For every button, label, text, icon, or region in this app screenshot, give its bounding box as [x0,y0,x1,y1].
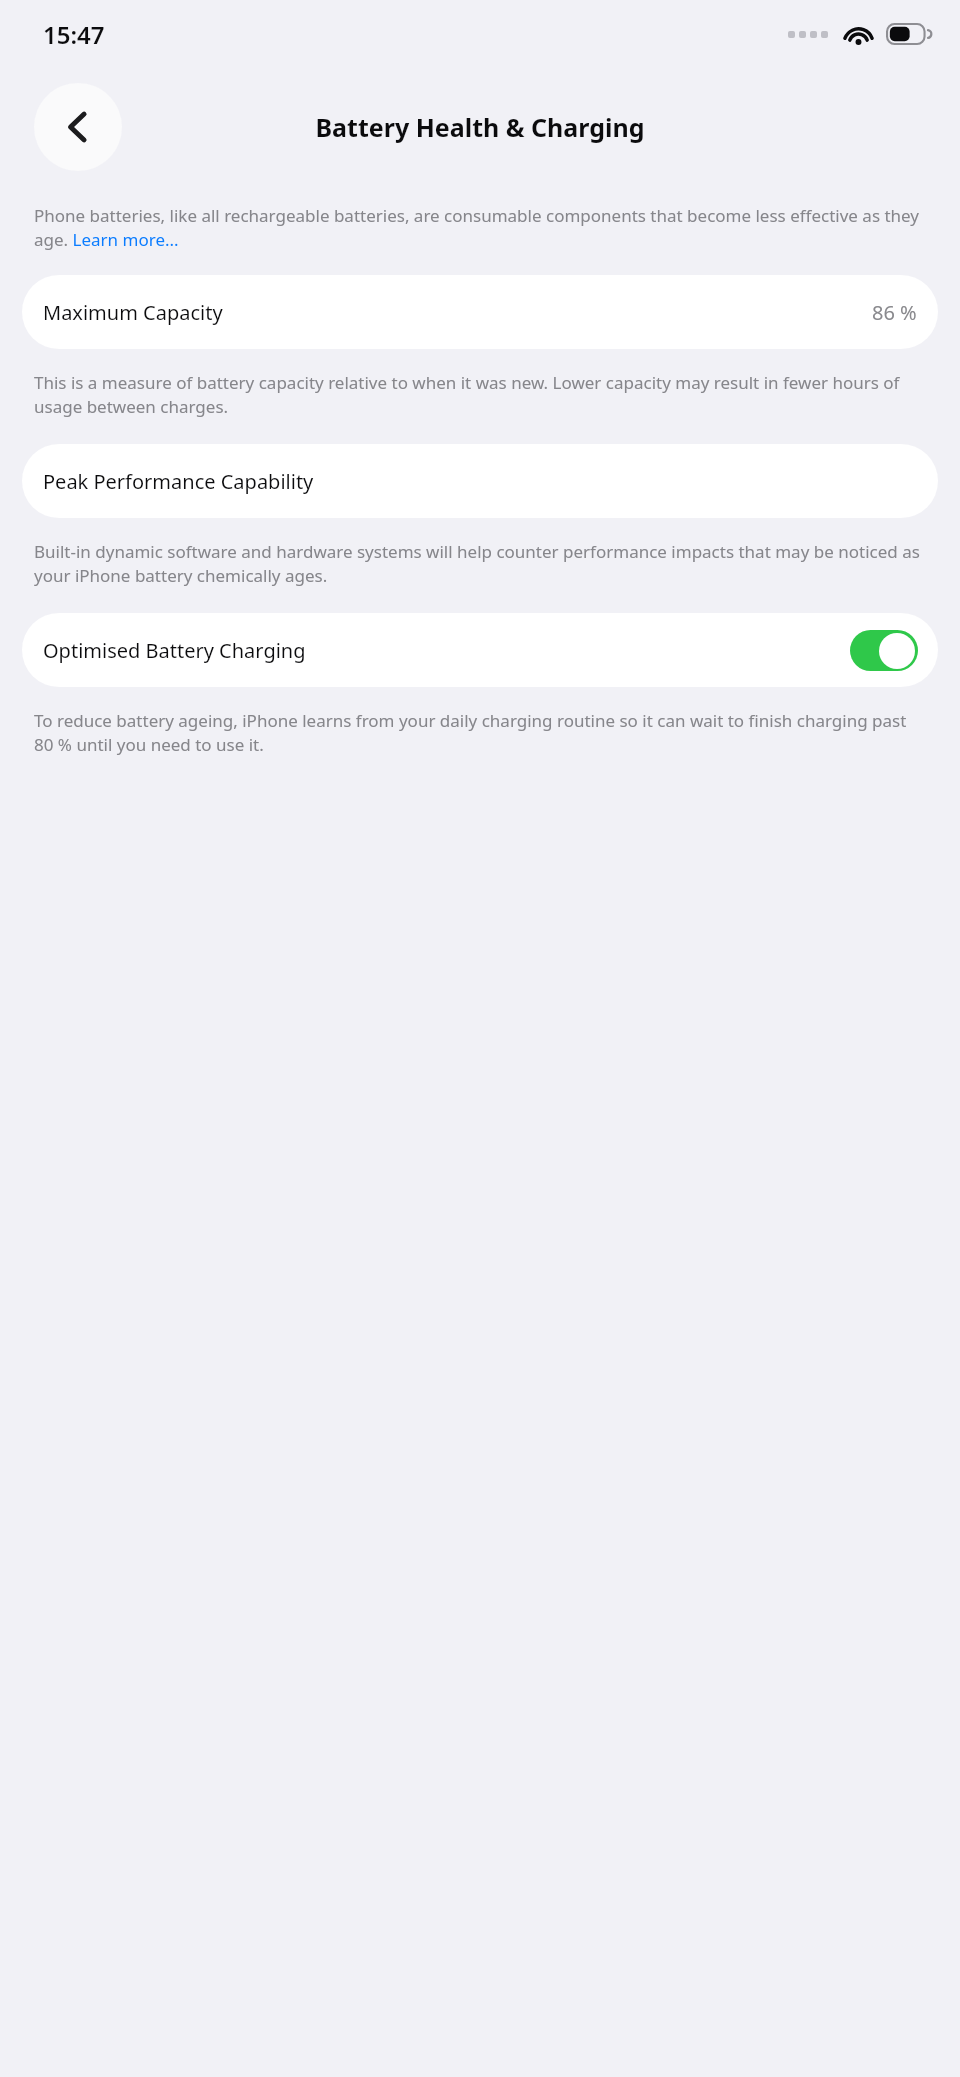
button[interactable]: Peak Performance Capability [22,444,938,518]
staticText: Phone batteries, like all rechargeable b… [34,204,926,251]
staticText: Maximum Capacity [43,299,223,326]
staticText: To reduce battery ageing, iPhone learns … [34,709,926,756]
other: Battery [886,23,930,45]
staticText: 15:47 [43,18,105,51]
staticText: 86 % [872,299,917,326]
button[interactable]: Optimised Battery Charging [22,613,938,687]
button[interactable]: Back [34,83,122,171]
staticText: Peak Performance Capability [43,468,314,495]
staticText: Built-in dynamic software and hardware s… [34,540,926,587]
button[interactable]: Optimised Battery Charging toggle, on [850,630,918,671]
button[interactable]: Maximum Capacity [22,275,938,349]
staticText: This is a measure of battery capacity re… [34,371,926,418]
staticText: Optimised Battery Charging [43,637,306,664]
staticText: Battery Health & Charging [315,110,645,144]
other: Wi-Fi [844,23,873,45]
